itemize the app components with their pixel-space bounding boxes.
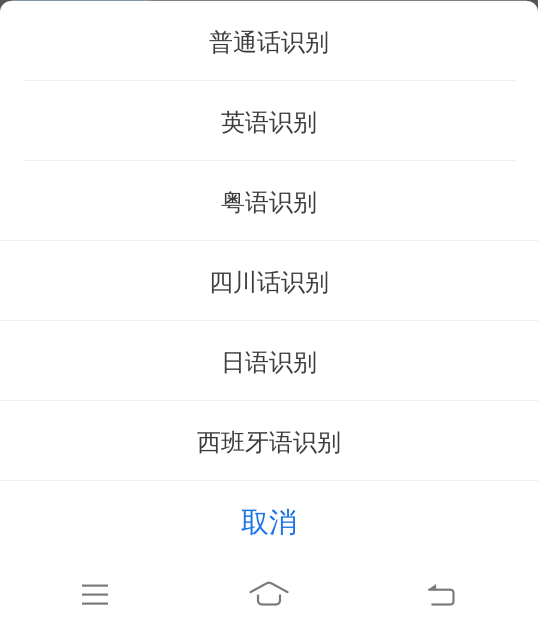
staticText: 四川话识别 [209, 268, 329, 297]
button[interactable]: Home [190, 563, 348, 626]
button[interactable]: 普通话识别 [0, 1, 538, 80]
staticText: 普通话识别 [209, 28, 329, 57]
staticText: 西班牙语识别 [197, 428, 341, 457]
staticText: 粤语识别 [221, 188, 317, 217]
button[interactable]: 日语识别 [0, 321, 538, 400]
button[interactable]: Recent apps [0, 563, 190, 626]
button[interactable]: Back [348, 563, 534, 626]
button[interactable]: 英语识别 [0, 81, 538, 160]
button[interactable]: 西班牙语识别 [0, 401, 538, 480]
button[interactable]: 取消 [0, 481, 538, 560]
button[interactable]: 粤语识别 [0, 161, 538, 240]
staticText: 日语识别 [221, 348, 317, 377]
staticText: 取消 [241, 505, 297, 540]
staticText: 英语识别 [221, 108, 317, 137]
button[interactable]: 四川话识别 [0, 241, 538, 320]
